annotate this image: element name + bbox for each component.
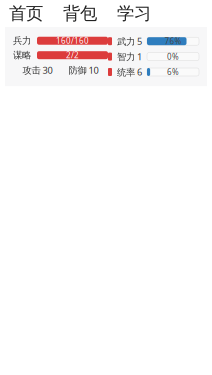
staticText: 160/160 xyxy=(56,35,89,46)
button[interactable]: 学习 xyxy=(117,3,151,24)
staticText: 攻击 30 xyxy=(22,64,52,76)
staticText: 学习 xyxy=(117,3,151,24)
staticText: 首页 xyxy=(9,3,43,24)
staticText: 76% xyxy=(164,36,181,46)
staticText: 背包 xyxy=(63,3,97,24)
button[interactable]: 首页 xyxy=(9,3,43,24)
staticText: 6% xyxy=(167,67,179,77)
staticText: 统率 6 xyxy=(117,66,142,78)
staticText: 防御 10 xyxy=(68,64,98,76)
staticText: 武力 5 xyxy=(117,35,142,47)
staticText: 兵力 xyxy=(13,35,31,46)
staticText: 谋略 xyxy=(13,49,31,61)
button[interactable]: 背包 xyxy=(63,3,97,24)
staticText: 2/2 xyxy=(66,50,79,60)
staticText: 0% xyxy=(167,51,179,62)
staticText: 智力 1 xyxy=(117,50,142,63)
